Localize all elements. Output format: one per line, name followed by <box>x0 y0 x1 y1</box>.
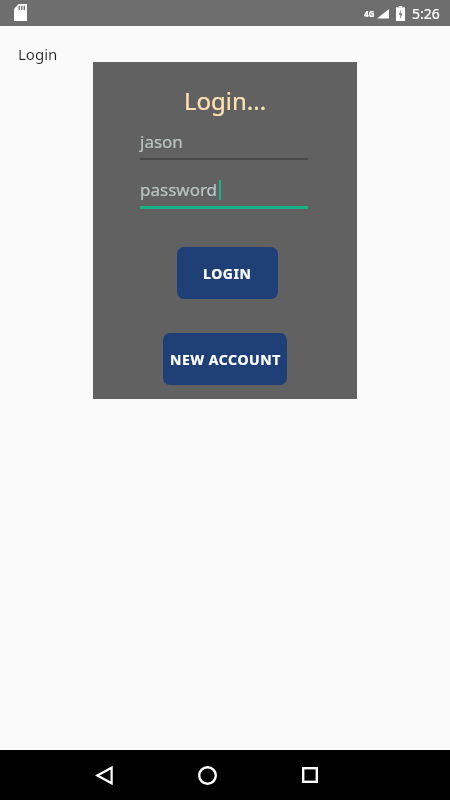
staticText: password <box>140 178 218 201</box>
button[interactable]: Username field <box>140 130 308 160</box>
button[interactable]: LOGIN <box>177 247 278 299</box>
staticText: jason <box>140 130 183 153</box>
button[interactable]: Recent apps <box>288 753 332 797</box>
staticText: LOGIN <box>203 264 252 283</box>
staticText: Login... <box>93 84 357 117</box>
button[interactable]: Back <box>82 753 126 797</box>
button[interactable]: Home <box>185 753 229 797</box>
staticText: 5:26 <box>412 4 440 23</box>
button[interactable]: Password field <box>140 178 308 209</box>
staticText: NEW ACCOUNT <box>170 350 281 369</box>
staticText: 4G <box>364 8 375 19</box>
staticText: Login <box>18 44 58 64</box>
button[interactable]: NEW ACCOUNT <box>163 333 287 385</box>
